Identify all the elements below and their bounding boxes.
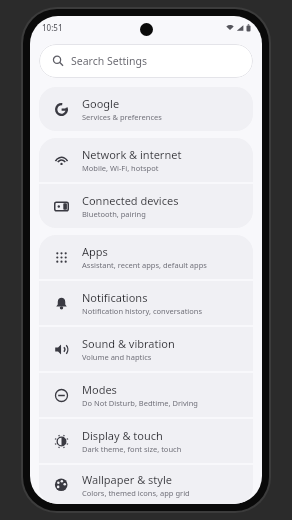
staticText: Notification history, conversations xyxy=(82,306,203,316)
staticText: Mobile, Wi-Fi, hotspot xyxy=(82,163,159,173)
button[interactable]: Display xyxy=(39,419,253,463)
button[interactable]: Notifications xyxy=(39,281,253,325)
button[interactable]: Sound xyxy=(39,327,253,371)
staticText: Wallpaper & style xyxy=(82,472,172,487)
staticText: Notifications xyxy=(82,290,148,305)
staticText: Volume and haptics xyxy=(82,352,152,362)
button[interactable]: Google settings xyxy=(39,87,253,131)
button[interactable]: Search Settings xyxy=(39,44,253,78)
staticText: Do Not Disturb, Bedtime, Driving xyxy=(82,398,198,408)
staticText: Bluetooth, pairing xyxy=(82,209,146,219)
staticText: Apps xyxy=(82,244,108,259)
staticText: 10:51 xyxy=(42,22,63,33)
button[interactable]: Wallpaper xyxy=(39,465,253,504)
staticText: Connected devices xyxy=(82,193,179,208)
button[interactable]: Modes xyxy=(39,373,253,417)
button[interactable]: Network xyxy=(39,138,253,182)
staticText: Display & touch xyxy=(82,428,163,443)
staticText: Network & internet xyxy=(82,147,182,162)
staticText: Dark theme, font size, touch xyxy=(82,444,182,454)
button[interactable]: Devices xyxy=(39,184,253,228)
staticText: Assistant, recent apps, default apps xyxy=(82,260,207,270)
staticText: Services & preferences xyxy=(82,112,162,122)
staticText: Colors, themed icons, app grid xyxy=(82,488,190,498)
staticText: Sound & vibration xyxy=(82,336,175,351)
staticText: Google xyxy=(82,96,120,111)
staticText: Search Settings xyxy=(71,54,147,68)
button[interactable]: Apps xyxy=(39,235,253,279)
staticText: Modes xyxy=(82,382,117,397)
